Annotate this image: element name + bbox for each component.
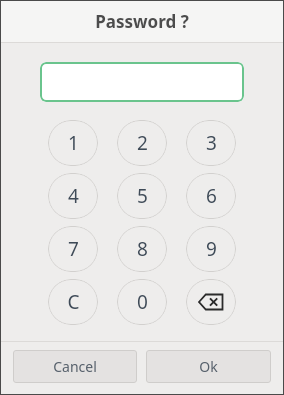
staticText: 7	[68, 236, 79, 262]
button[interactable]: 9	[186, 226, 236, 272]
button[interactable]: Backspace	[186, 279, 236, 325]
button[interactable]: 5	[117, 173, 167, 219]
button[interactable]: 3	[186, 120, 236, 166]
button[interactable]: 1	[48, 120, 98, 166]
button[interactable]: Ok	[146, 350, 271, 383]
staticText: 8	[137, 236, 148, 262]
staticText: Cancel	[53, 357, 97, 376]
button[interactable]: Cancel	[13, 350, 137, 383]
staticText: 3	[206, 130, 217, 156]
staticText: C	[67, 289, 80, 315]
staticText: 9	[206, 236, 217, 262]
staticText: 4	[68, 183, 79, 209]
button[interactable]: 4	[48, 173, 98, 219]
button[interactable]: 8	[117, 226, 167, 272]
staticText: 5	[137, 183, 148, 209]
staticText: Ok	[199, 357, 218, 376]
staticText: Password ?	[95, 10, 189, 33]
staticText: 2	[137, 130, 148, 156]
button[interactable]: 0	[117, 279, 167, 325]
staticText: 1	[68, 130, 79, 156]
staticText: 6	[206, 183, 217, 209]
button[interactable]: 7	[48, 226, 98, 272]
button[interactable]: 2	[117, 120, 167, 166]
staticText: 0	[137, 289, 148, 315]
button[interactable]	[40, 62, 244, 102]
button[interactable]: 6	[186, 173, 236, 219]
button[interactable]: C	[48, 279, 98, 325]
